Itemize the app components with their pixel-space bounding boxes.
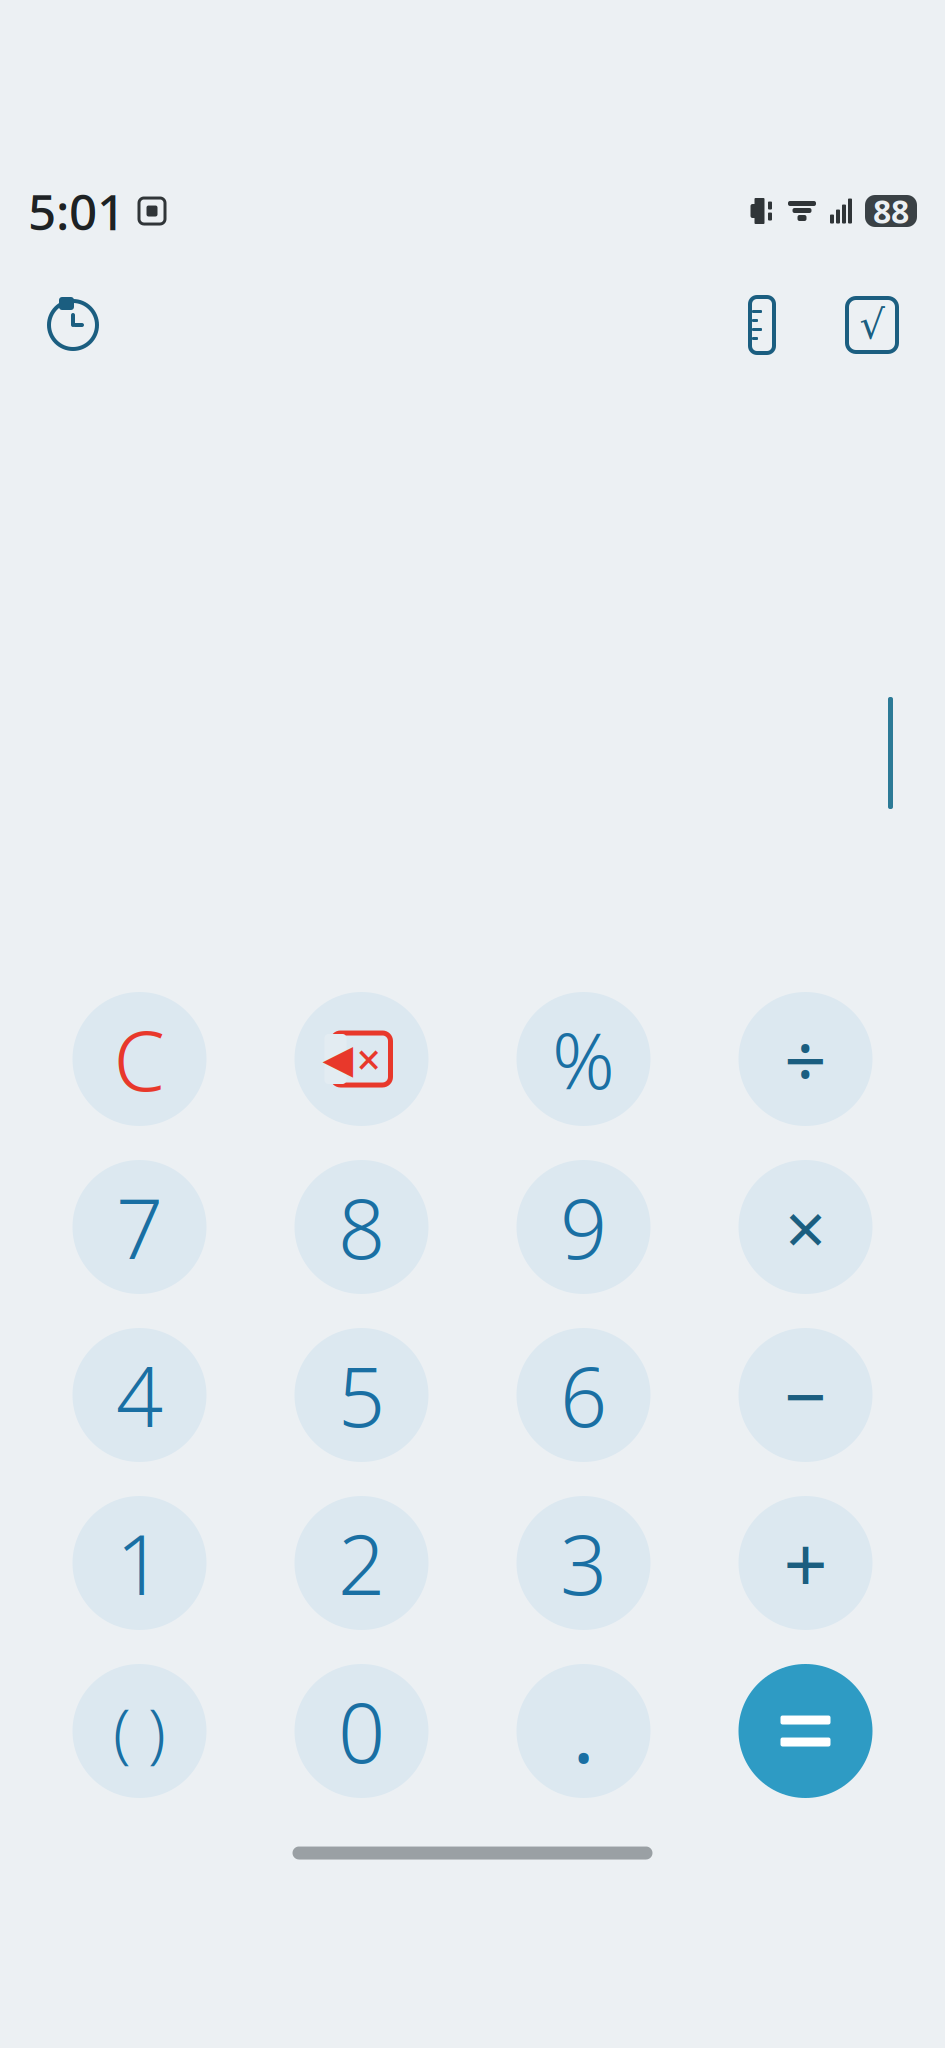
button[interactable]: ×: [694, 1156, 916, 1298]
button[interactable]: 1: [28, 1492, 250, 1634]
button[interactable]: Equals: [694, 1660, 916, 1802]
staticText: %: [552, 1008, 615, 1110]
button[interactable]: +: [694, 1492, 916, 1634]
staticText: .: [572, 1676, 594, 1786]
button[interactable]: History: [30, 282, 116, 368]
button[interactable]: Scientific mode: [829, 282, 915, 368]
button[interactable]: 3: [472, 1492, 694, 1634]
staticText: ÷: [784, 1009, 827, 1109]
staticText: 5: [338, 1340, 385, 1450]
button[interactable]: −: [694, 1324, 916, 1466]
button[interactable]: ÷: [694, 988, 916, 1130]
staticText: 5:01: [28, 178, 125, 244]
button[interactable]: .: [472, 1660, 694, 1802]
staticText: 4: [116, 1340, 163, 1450]
button[interactable]: 2: [250, 1492, 472, 1634]
staticText: ( ): [113, 1688, 166, 1773]
button[interactable]: %: [472, 988, 694, 1130]
staticText: 0: [338, 1676, 385, 1786]
button[interactable]: 5: [250, 1324, 472, 1466]
staticText: 2: [338, 1508, 385, 1618]
staticText: ×: [785, 1179, 826, 1275]
button[interactable]: 6: [472, 1324, 694, 1466]
button[interactable]: 0: [250, 1660, 472, 1802]
staticText: 7: [116, 1172, 163, 1282]
staticText: ◀: [322, 1036, 353, 1082]
staticText: 88: [873, 190, 909, 232]
button[interactable]: ( ): [28, 1660, 250, 1802]
button[interactable]: 9: [472, 1156, 694, 1298]
button[interactable]: C: [28, 988, 250, 1130]
staticText: 3: [560, 1508, 607, 1618]
staticText: 1: [116, 1508, 163, 1618]
staticText: +: [783, 1512, 827, 1614]
staticText: 9: [560, 1172, 607, 1282]
button[interactable]: ◀: [250, 988, 472, 1130]
staticText: √: [859, 302, 884, 348]
staticText: C: [113, 1004, 165, 1114]
button[interactable]: Unit converter: [719, 282, 805, 368]
button[interactable]: 7: [28, 1156, 250, 1298]
staticText: 6: [560, 1340, 607, 1450]
button[interactable]: 4: [28, 1324, 250, 1466]
staticText: −: [784, 1345, 827, 1445]
button[interactable]: 8: [250, 1156, 472, 1298]
staticText: ×: [356, 1031, 380, 1087]
staticText: 8: [338, 1172, 385, 1282]
